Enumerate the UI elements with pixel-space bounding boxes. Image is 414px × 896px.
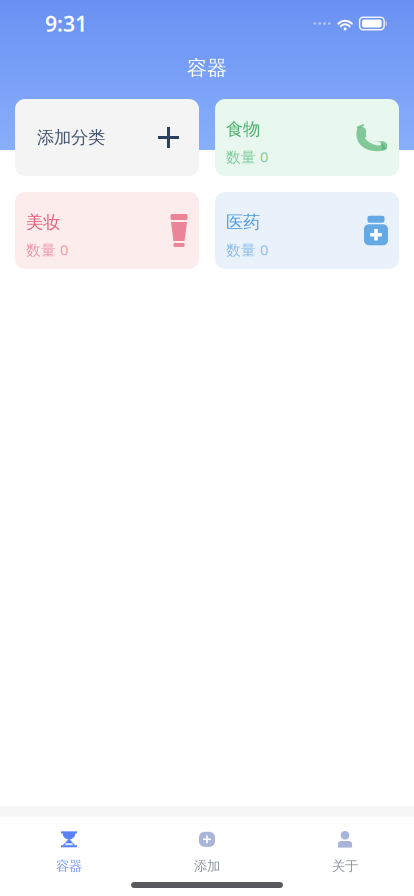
staticText: 容器 [56,858,82,874]
staticText: 美妆 [26,212,60,233]
staticText: 数量 0 [226,147,268,166]
button[interactable]: 美妆 [15,192,199,269]
staticText: 关于 [332,858,358,874]
staticText: 医药 [226,212,260,233]
staticText: 添加分类 [37,127,105,148]
button[interactable]: 医药 [215,192,399,269]
button[interactable]: 关于 [276,817,414,876]
button[interactable]: 食物 [215,99,399,176]
staticText: 数量 0 [226,240,268,259]
button[interactable]: 容器 [0,817,138,876]
staticText: 食物 [226,119,260,140]
staticText: 容器 [187,56,227,80]
staticText: 数量 0 [26,240,68,259]
staticText: 添加 [194,858,220,874]
button[interactable]: 添加 [138,817,276,876]
button[interactable]: 添加分类 [15,99,199,176]
staticText: 9:31 [45,9,87,38]
